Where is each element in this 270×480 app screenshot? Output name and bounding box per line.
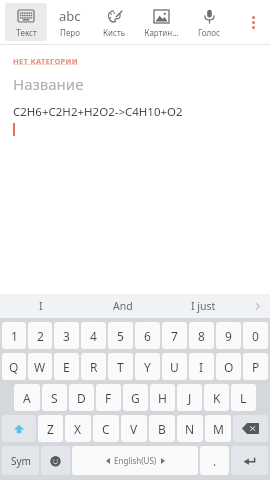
button[interactable]: P [243,353,268,380]
button[interactable]: R [81,353,106,380]
button[interactable]: Картин… [137,3,185,41]
button[interactable]: 1 [2,322,26,349]
button[interactable]: And [82,294,163,318]
staticText: 9 [225,328,232,344]
button[interactable]: F [96,384,121,411]
staticText: Y [144,359,151,375]
staticText: R [90,359,98,375]
staticText: C [102,421,110,437]
staticText: Q [9,359,19,375]
staticText: N [185,421,195,437]
button[interactable]: E [54,353,79,380]
staticText: Голос [198,27,220,38]
button[interactable]: M [205,415,231,442]
button[interactable]: H [150,384,175,411]
staticText: Картин… [144,27,179,38]
button[interactable]: W [28,353,52,380]
button[interactable]: Y [135,353,160,380]
button[interactable]: 7 [162,322,187,349]
button[interactable]: 9 [216,322,241,349]
staticText: P [252,359,260,375]
button[interactable]: Q [2,353,26,380]
button[interactable]: Z [38,415,63,442]
button[interactable]: Кисть [93,3,135,41]
staticText: S [51,390,58,406]
button[interactable]: A [14,384,40,411]
staticText: 5 [117,328,124,344]
staticText: 0 [252,328,259,344]
staticText: I [39,299,43,313]
staticText: T [117,359,124,375]
button[interactable]: L [231,384,256,411]
staticText: I [199,359,204,375]
staticText: 8 [198,328,205,344]
button[interactable]: O [216,353,241,380]
staticText: Перо [60,27,80,38]
staticText: abc [59,7,81,25]
button[interactable]: 4 [81,322,106,349]
button[interactable]: K [204,384,229,411]
staticText: B [158,421,166,437]
staticText: 2 [37,328,44,344]
staticText: Z [47,421,54,437]
button[interactable]: D [69,384,94,411]
staticText: D [77,390,86,406]
button[interactable]: T [108,353,133,380]
staticText: 7 [171,328,178,344]
button[interactable]: More suggestions [244,294,270,318]
button[interactable]: 6 [135,322,160,349]
button[interactable]: N [177,415,203,442]
button[interactable]: 8 [189,322,214,349]
button[interactable]: Голос [187,3,231,41]
staticText: E [63,359,70,375]
button[interactable]: I just [163,294,244,318]
button[interactable]: I [189,353,214,380]
button[interactable]: НЕТ КАТЕГОРИИ [13,56,78,66]
button[interactable]: 2 [28,322,52,349]
staticText: K [213,390,221,406]
staticText: J [188,390,192,406]
button[interactable]: 5 [108,322,133,349]
staticText: C2H6+C2H2+H2O2->C4H10+O2 [13,104,183,120]
staticText: НЕТ КАТЕГОРИИ [13,56,78,66]
staticText: . [213,453,217,469]
staticText: Текст [16,27,37,38]
button[interactable]: abc [49,3,91,41]
button[interactable]: Backspace [233,415,268,442]
button[interactable]: Sym [2,446,39,475]
staticText: Sym [11,454,31,468]
staticText: L [240,390,247,406]
staticText: 4 [90,328,97,344]
button[interactable]: B [149,415,175,442]
staticText: I just [191,299,216,313]
staticText: 1 [11,328,18,344]
staticText: English(US) [114,455,157,466]
button[interactable]: 3 [54,322,79,349]
button[interactable]: Shift [2,415,36,442]
staticText: G [131,390,140,406]
button[interactable]: V [121,415,147,442]
button[interactable]: More options [236,5,270,39]
staticText: O [224,359,234,375]
button[interactable]: C [93,415,119,442]
button[interactable]: Текст [5,3,47,41]
staticText: V [130,421,138,437]
button[interactable]: I [0,294,82,318]
staticText: X [74,421,82,437]
button[interactable]: J [177,384,202,411]
button[interactable]: 0 [243,322,268,349]
staticText: Кисть [103,27,125,38]
staticText: M [213,421,224,437]
button[interactable]: . [200,446,229,475]
button[interactable]: Space, English(US) [72,446,198,475]
staticText: 6 [144,328,151,344]
staticText: H [158,390,167,406]
button[interactable]: U [162,353,187,380]
button[interactable]: S [42,384,67,411]
staticText: W [34,359,46,375]
button[interactable]: Emoji [41,446,70,475]
button[interactable]: Enter [231,446,268,475]
button[interactable]: G [123,384,148,411]
button[interactable]: X [65,415,91,442]
other: Space, English(US) [72,446,198,475]
